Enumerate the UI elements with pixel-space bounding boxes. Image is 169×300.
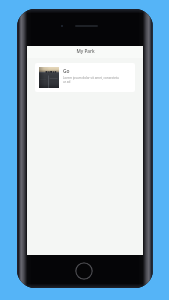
button[interactable]: Go [35, 63, 135, 92]
staticText: ur ad [63, 80, 71, 84]
staticText: My Park [76, 48, 95, 54]
button[interactable]: Home [75, 262, 93, 280]
staticText: Go [63, 68, 70, 75]
staticText: Lorem ipsum dolor sit amet, consectetu [63, 76, 119, 80]
